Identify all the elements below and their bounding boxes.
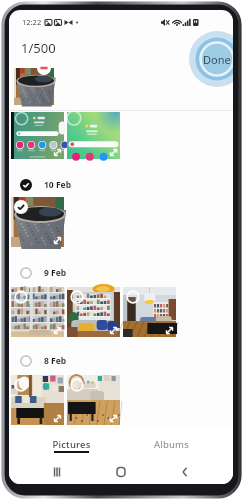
- staticText: Pictures: [52, 438, 91, 451]
- button[interactable]: Back: [174, 461, 196, 483]
- staticText: 8 Feb: [44, 355, 67, 367]
- staticText: 12:22: [22, 17, 42, 27]
- staticText: Done: [203, 52, 231, 67]
- button[interactable]: [11, 375, 64, 425]
- button[interactable]: Albums: [121, 432, 221, 459]
- button[interactable]: Pictures: [21, 432, 121, 459]
- button[interactable]: [14, 68, 54, 105]
- button[interactable]: [67, 287, 120, 337]
- button[interactable]: [123, 287, 176, 337]
- button[interactable]: Done: [180, 22, 233, 96]
- button[interactable]: [11, 197, 64, 247]
- staticText: 10 Feb: [44, 179, 72, 191]
- button[interactable]: [11, 112, 64, 159]
- button[interactable]: Recents: [46, 461, 68, 483]
- button[interactable]: Remove: [37, 61, 51, 75]
- button[interactable]: [11, 287, 64, 337]
- staticText: Albums: [154, 438, 189, 451]
- button[interactable]: [67, 112, 120, 159]
- button[interactable]: [67, 375, 120, 425]
- button[interactable]: Home: [110, 461, 132, 483]
- button[interactable]: 9 Feb: [9, 261, 233, 285]
- button[interactable]: 10 Feb: [9, 173, 233, 197]
- button[interactable]: 8 Feb: [9, 349, 233, 373]
- staticText: 1/500: [21, 39, 56, 57]
- staticText: 9 Feb: [44, 267, 67, 279]
